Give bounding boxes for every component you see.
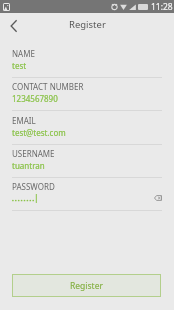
staticText: test	[12, 60, 27, 71]
staticText: test@test.com	[12, 127, 66, 138]
staticText: Register	[70, 280, 103, 292]
button[interactable]: EMAIL	[0, 111, 174, 145]
staticText: Register	[69, 18, 106, 31]
button[interactable]: USERNAME	[0, 144, 174, 178]
staticText: PASSWORD	[12, 181, 55, 192]
staticText: 1234567890	[12, 93, 58, 104]
button[interactable]: Register	[12, 274, 161, 297]
staticText: USERNAME	[12, 148, 55, 159]
staticText: EMAIL	[12, 115, 36, 126]
button[interactable]: Backspace	[153, 193, 163, 203]
button[interactable]: PASSWORD	[0, 177, 174, 211]
staticText: 11:28	[151, 1, 173, 13]
button[interactable]: Back	[1, 13, 27, 39]
button[interactable]: CONTACT NUMBER	[0, 77, 174, 111]
staticText: tuantran	[12, 160, 45, 171]
staticText: CONTACT NUMBER	[12, 81, 84, 92]
staticText: NAME	[12, 48, 35, 59]
other: Screenshot	[3, 3, 10, 11]
button[interactable]: NAME	[0, 44, 174, 78]
